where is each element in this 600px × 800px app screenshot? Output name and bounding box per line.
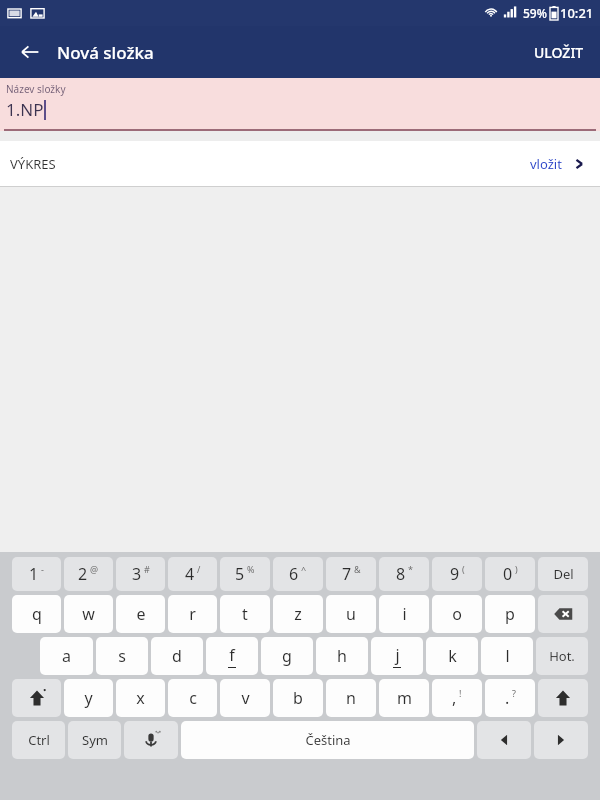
staticText: 3 [132,563,142,585]
button[interactable]: 4 [168,557,217,591]
button[interactable]: u [326,595,376,633]
button[interactable]: p [485,595,535,633]
button[interactable]: bksp [538,595,588,633]
button[interactable]: i [379,595,429,633]
staticText: 8 [396,563,406,585]
staticText: % [247,563,255,575]
staticText: u [346,603,356,625]
button[interactable]: . [485,679,535,717]
button[interactable]: r [168,595,217,633]
button[interactable]: shiftdot [12,679,61,717]
staticText: c [189,687,197,709]
staticText: & [354,563,361,575]
button[interactable]: right [534,721,588,759]
button[interactable]: Back [10,32,50,72]
button[interactable]: ULOŽIT [518,26,600,78]
staticText: j [395,644,400,666]
staticText: 7 [342,563,352,585]
button[interactable]: v [220,679,270,717]
staticText: i [402,603,407,625]
staticText: VÝKRES [10,155,56,173]
staticText: 4 [185,563,195,585]
staticText: Hot. [549,647,575,665]
staticText: v [241,687,250,709]
staticText: vložit [530,155,562,173]
button[interactable]: a [40,637,93,675]
button[interactable]: 5 [220,557,270,591]
button[interactable]: Čeština [181,721,474,759]
button[interactable]: s [96,637,148,675]
staticText: 5 [235,563,245,585]
staticText: r [189,603,196,625]
staticText: k [448,645,457,667]
staticText: ^ [301,563,307,575]
button[interactable]: g [261,637,313,675]
staticText: z [294,603,302,625]
staticText: n [346,687,356,709]
staticText: y [84,687,93,709]
button[interactable]: q [12,595,61,633]
button[interactable]: d [151,637,203,675]
staticText: 9 [450,563,460,585]
staticText: e [136,603,146,625]
staticText: 59% [523,5,547,21]
button[interactable]: , [432,679,482,717]
button[interactable]: 8 [379,557,429,591]
staticText: , [452,687,457,709]
button[interactable]: b [273,679,323,717]
button[interactable]: 0 [485,557,535,591]
button[interactable]: m [379,679,429,717]
staticText: o [452,603,462,625]
button[interactable]: VÝKRES [0,141,600,186]
button[interactable]: t [220,595,270,633]
staticText: f [229,644,235,666]
button[interactable]: c [168,679,217,717]
staticText: s [118,645,126,667]
staticText: m [397,687,412,709]
button[interactable]: l [481,637,533,675]
staticText: ULOŽIT [534,43,584,62]
button[interactable]: 2 [64,557,113,591]
button[interactable]: Hot. [536,637,588,675]
staticText: w [82,603,95,625]
button[interactable]: left [477,721,531,759]
button[interactable]: j [371,637,423,675]
button[interactable]: Sym [68,721,121,759]
staticText: Čeština [305,731,351,749]
staticText: Del [553,565,574,583]
staticText: 1.NP [6,98,44,121]
button[interactable]: z [273,595,323,633]
button[interactable]: Ctrl [12,721,65,759]
staticText: ( [462,563,465,575]
button[interactable]: 7 [326,557,376,591]
button[interactable]: 6 [273,557,323,591]
staticText: Nová složka [57,41,154,64]
button[interactable]: e [116,595,165,633]
staticText: 0 [503,563,513,585]
button[interactable]: 9 [432,557,482,591]
staticText: b [293,687,303,709]
button[interactable]: 3 [116,557,165,591]
button[interactable]: o [432,595,482,633]
staticText: x [136,687,145,709]
staticText: ? [512,687,516,699]
button[interactable]: f [206,637,258,675]
button[interactable]: 1 [12,557,61,591]
button[interactable]: w [64,595,113,633]
button[interactable]: k [426,637,478,675]
staticText: 1 [29,563,39,585]
staticText: 6 [289,563,299,585]
button[interactable]: y [64,679,113,717]
button[interactable]: Del [538,557,588,591]
staticText: * [408,563,413,575]
button[interactable]: n [326,679,376,717]
staticText: Sym [82,731,108,749]
button[interactable]: mic [124,721,178,759]
button[interactable]: h [316,637,368,675]
button[interactable]: shift [538,679,588,717]
button[interactable]: x [116,679,165,717]
staticText: @ [90,563,99,575]
staticText: - [41,563,44,575]
staticText: d [172,645,182,667]
staticText: Ctrl [28,731,50,749]
